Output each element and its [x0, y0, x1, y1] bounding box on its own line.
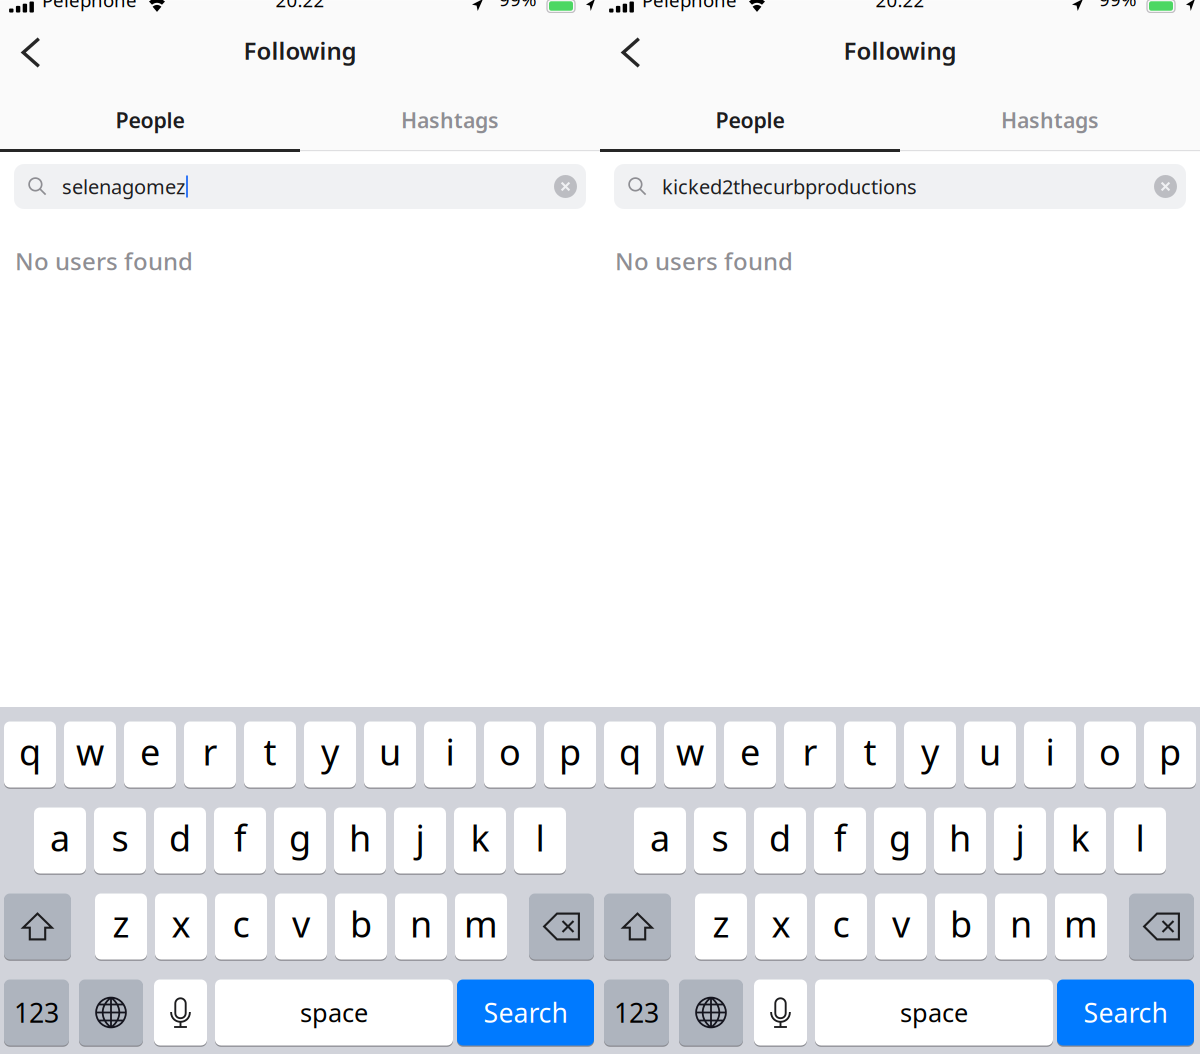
button[interactable]: Next keyboard: [679, 979, 743, 1046]
staticText: r: [802, 728, 817, 775]
button[interactable]: r: [784, 721, 836, 788]
staticText: c: [232, 900, 249, 947]
button[interactable]: j: [994, 807, 1046, 874]
staticText: t: [863, 728, 876, 775]
staticText: 99%: [1099, 0, 1137, 11]
button[interactable]: t: [844, 721, 896, 788]
button[interactable]: Back: [0, 13, 62, 88]
button[interactable]: l: [514, 807, 566, 874]
button[interactable]: k: [1054, 807, 1106, 874]
button[interactable]: a: [634, 807, 686, 874]
staticText: g: [289, 814, 311, 861]
button[interactable]: People: [0, 88, 300, 152]
button[interactable]: space: [815, 979, 1053, 1046]
button[interactable]: r: [184, 721, 236, 788]
button[interactable]: Next keyboard: [79, 979, 143, 1046]
button[interactable]: Search: [457, 979, 594, 1046]
button[interactable]: h: [934, 807, 986, 874]
button[interactable]: f: [214, 807, 266, 874]
button[interactable]: Search: [1057, 979, 1194, 1046]
staticText: No users found: [15, 245, 193, 277]
button[interactable]: c: [215, 893, 267, 960]
button[interactable]: People: [600, 88, 900, 152]
staticText: 20:22: [875, 0, 924, 12]
staticText: 123: [614, 995, 659, 1030]
button[interactable]: d: [754, 807, 806, 874]
staticText: h: [349, 814, 371, 861]
button[interactable]: y: [904, 721, 956, 788]
button[interactable]: m: [455, 893, 507, 960]
button[interactable]: Shift: [604, 893, 671, 960]
staticText: v: [292, 900, 310, 947]
button[interactable]: e: [724, 721, 776, 788]
button[interactable]: l: [1114, 807, 1166, 874]
button[interactable]: v: [875, 893, 927, 960]
button[interactable]: Hashtags: [900, 88, 1200, 152]
staticText: z: [112, 900, 129, 947]
button[interactable]: u: [364, 721, 416, 788]
button[interactable]: e: [124, 721, 176, 788]
staticText: y: [921, 728, 939, 775]
button[interactable]: Dictate: [154, 979, 207, 1046]
button[interactable]: v: [275, 893, 327, 960]
button[interactable]: c: [815, 893, 867, 960]
staticText: m: [1064, 900, 1098, 947]
button[interactable]: d: [154, 807, 206, 874]
staticText: q: [19, 728, 41, 775]
button[interactable]: s: [94, 807, 146, 874]
button[interactable]: a: [34, 807, 86, 874]
button[interactable]: Delete: [1129, 893, 1194, 960]
button[interactable]: j: [394, 807, 446, 874]
button[interactable]: x: [155, 893, 207, 960]
button[interactable]: Delete: [529, 893, 594, 960]
button[interactable]: z: [95, 893, 147, 960]
staticText: Pelephone: [42, 0, 137, 12]
button[interactable]: Clear text: [550, 171, 581, 202]
button[interactable]: p: [544, 721, 596, 788]
button[interactable]: h: [334, 807, 386, 874]
staticText: l: [535, 814, 544, 861]
button[interactable]: Hashtags: [300, 88, 600, 152]
staticText: e: [140, 728, 160, 775]
button[interactable]: Shift: [4, 893, 71, 960]
button[interactable]: w: [64, 721, 116, 788]
button[interactable]: g: [274, 807, 326, 874]
staticText: k: [470, 814, 489, 861]
button[interactable]: Dictate: [754, 979, 807, 1046]
button[interactable]: x: [755, 893, 807, 960]
button[interactable]: Back: [600, 13, 662, 88]
button[interactable]: o: [484, 721, 536, 788]
button[interactable]: Clear text: [1150, 171, 1181, 202]
button[interactable]: t: [244, 721, 296, 788]
button[interactable]: n: [395, 893, 447, 960]
button[interactable]: s: [694, 807, 746, 874]
staticText: x: [771, 900, 790, 947]
button[interactable]: i: [1024, 721, 1076, 788]
button[interactable]: o: [1084, 721, 1136, 788]
button[interactable]: f: [814, 807, 866, 874]
button[interactable]: q: [604, 721, 656, 788]
button[interactable]: u: [964, 721, 1016, 788]
button[interactable]: g: [874, 807, 926, 874]
button[interactable]: m: [1055, 893, 1107, 960]
staticText: l: [1135, 814, 1144, 861]
button[interactable]: b: [935, 893, 987, 960]
button[interactable]: q: [4, 721, 56, 788]
button[interactable]: space: [215, 979, 453, 1046]
staticText: b: [950, 900, 972, 947]
staticText: z: [712, 900, 729, 947]
button[interactable]: y: [304, 721, 356, 788]
button[interactable]: 123: [604, 979, 669, 1046]
button[interactable]: z: [695, 893, 747, 960]
button[interactable]: b: [335, 893, 387, 960]
staticText: u: [379, 728, 401, 775]
staticText: People: [115, 106, 184, 134]
button[interactable]: k: [454, 807, 506, 874]
button[interactable]: w: [664, 721, 716, 788]
button[interactable]: n: [995, 893, 1047, 960]
staticText: t: [263, 728, 276, 775]
button[interactable]: p: [1144, 721, 1196, 788]
button[interactable]: i: [424, 721, 476, 788]
staticText: f: [234, 814, 246, 861]
button[interactable]: 123: [4, 979, 69, 1046]
